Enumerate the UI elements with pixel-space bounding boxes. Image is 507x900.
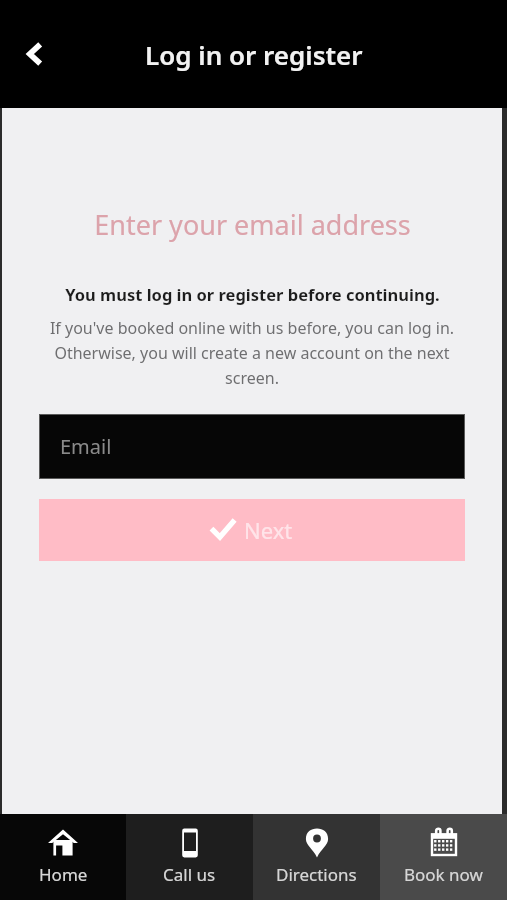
staticText: Book now	[404, 863, 483, 886]
staticText: Home	[39, 863, 88, 886]
staticText: Call us	[163, 863, 216, 886]
staticText: Email	[60, 433, 112, 460]
button[interactable]: Back	[10, 29, 60, 79]
staticText: Directions	[276, 863, 357, 886]
button[interactable]: Call us	[126, 814, 253, 900]
staticText: Next	[244, 515, 293, 545]
staticText: You must log in or register before conti…	[65, 283, 440, 305]
staticText: Enter your email address	[94, 206, 411, 243]
button[interactable]: Book now	[380, 814, 507, 900]
staticText: Log in or register	[145, 37, 363, 72]
button[interactable]: Next	[39, 499, 465, 561]
button[interactable]: Home	[0, 814, 126, 900]
staticText: If you've booked online with us before, …	[38, 317, 466, 388]
button[interactable]: Directions	[253, 814, 380, 900]
button[interactable]: Email	[39, 414, 465, 479]
